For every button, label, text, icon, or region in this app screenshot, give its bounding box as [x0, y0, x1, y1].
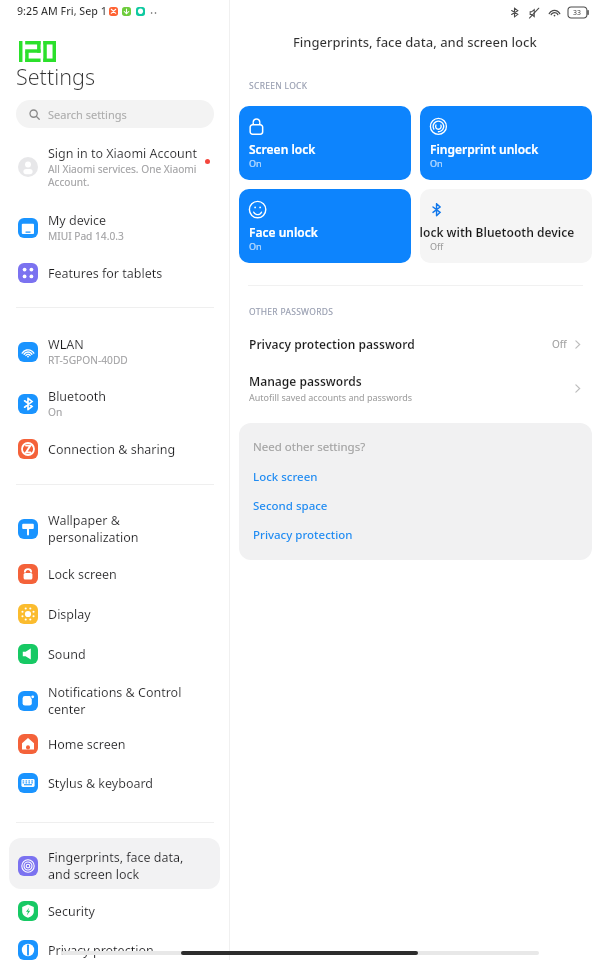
staticText: On: [48, 405, 63, 419]
staticText: Wallpaper & personalization: [48, 512, 139, 546]
staticText: Connection & sharing: [48, 441, 176, 458]
staticText: Off: [552, 337, 567, 351]
staticText: MIUI Pad 14.0.3: [48, 229, 124, 243]
staticText: Security: [48, 903, 95, 920]
staticText: Fingerprints, face data, and screen lock: [293, 33, 537, 51]
staticText: Notifications & Control center: [48, 684, 182, 718]
staticText: On: [430, 157, 443, 169]
button[interactable]: Connection & sharing: [9, 432, 220, 466]
button[interactable]: Sound: [9, 637, 220, 671]
staticText: Sign in to Xiaomi Account: [48, 145, 198, 162]
staticText: Autofill saved accounts and passwords: [249, 391, 413, 403]
button[interactable]: Display: [9, 597, 220, 631]
button[interactable]: WLAN: [9, 328, 220, 375]
button[interactable]: Privacy protection: [9, 933, 220, 960]
staticText: Search settings: [48, 107, 127, 122]
staticText: On: [249, 240, 262, 252]
staticText: All Xiaomi services. One Xiaomi Account.: [48, 162, 197, 189]
button[interactable]: Lock screen: [253, 469, 318, 485]
staticText: Fingerprint unlock: [430, 141, 539, 157]
button[interactable]: Privacy protection password: [239, 331, 592, 357]
staticText: Off: [430, 240, 444, 252]
button[interactable]: Manage passwords: [239, 370, 592, 406]
staticText: Second space: [253, 498, 328, 514]
staticText: SCREEN LOCK: [249, 80, 308, 92]
staticText: Need other settings?: [253, 439, 366, 455]
button[interactable]: Fingerprints, face data, and screen lock: [9, 839, 220, 892]
staticText: Manage passwords: [249, 373, 362, 389]
button[interactable]: Wallpaper & personalization: [9, 502, 220, 555]
button[interactable]: Search settings: [16, 100, 214, 128]
button[interactable]: Unlock with Bluetooth device: [420, 189, 592, 263]
button[interactable]: Sign in to Xiaomi Account: [9, 139, 220, 194]
button[interactable]: Fingerprint unlock: [420, 106, 592, 180]
staticText: Privacy protection password: [249, 336, 415, 352]
button[interactable]: Bluetooth: [9, 380, 220, 427]
staticText: My device: [48, 212, 107, 229]
button[interactable]: Second space: [253, 498, 328, 514]
staticText: Lock screen: [253, 469, 318, 485]
staticText: Settings: [16, 62, 95, 91]
staticText: OTHER PASSWORDS: [249, 306, 334, 318]
staticText: Privacy protection: [253, 527, 353, 543]
staticText: Home screen: [48, 736, 126, 753]
staticText: Features for tablets: [48, 265, 163, 282]
staticText: 9:25 AM Fri, Sep 1: [17, 4, 107, 19]
button[interactable]: Lock screen: [9, 557, 220, 591]
button[interactable]: Privacy protection: [253, 527, 353, 543]
staticText: RT-5GPON-40DD: [48, 353, 128, 367]
staticText: 33: [573, 8, 582, 18]
staticText: On: [249, 157, 262, 169]
button[interactable]: Face unlock: [239, 189, 411, 263]
button[interactable]: Screen lock: [239, 106, 411, 180]
staticText: Lock screen: [48, 566, 117, 583]
staticText: Stylus & keyboard: [48, 775, 154, 792]
button[interactable]: Security: [9, 894, 220, 928]
staticText: Privacy protection: [48, 942, 154, 959]
button[interactable]: Home screen: [9, 727, 220, 761]
staticText: Bluetooth: [48, 388, 107, 405]
button[interactable]: Features for tablets: [9, 256, 220, 290]
button[interactable]: Notifications & Control center: [9, 674, 220, 727]
staticText: Unlock with Bluetooth device: [420, 224, 575, 240]
button[interactable]: My device: [9, 204, 220, 251]
staticText: WLAN: [48, 336, 84, 353]
staticText: Sound: [48, 646, 86, 663]
staticText: Display: [48, 606, 91, 623]
staticText: Face unlock: [249, 224, 318, 240]
staticText: Screen lock: [249, 141, 316, 157]
button[interactable]: Stylus & keyboard: [9, 766, 220, 800]
staticText: Fingerprints, face data, and screen lock: [48, 849, 184, 883]
